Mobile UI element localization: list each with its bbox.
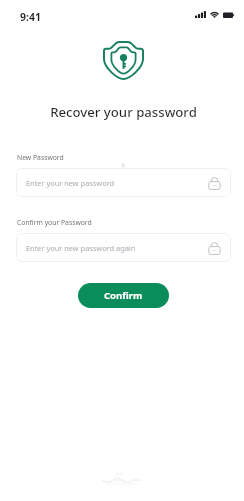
staticText: 9:41 xyxy=(20,10,41,24)
other: Toggle password visibility xyxy=(208,176,221,190)
staticText: Confirm xyxy=(104,289,143,302)
staticText: Confirm your Password xyxy=(17,218,92,227)
staticText: Recover your password xyxy=(3,103,244,121)
staticText: Enter your new password again xyxy=(26,243,208,253)
button[interactable]: Enter your new password again xyxy=(16,233,231,262)
staticText: Enter your new password xyxy=(26,178,208,188)
staticText: New Password xyxy=(17,153,64,162)
button[interactable]: Enter your new password xyxy=(16,168,231,197)
other: Toggle password visibility xyxy=(208,241,221,255)
button[interactable]: Confirm xyxy=(78,283,169,308)
